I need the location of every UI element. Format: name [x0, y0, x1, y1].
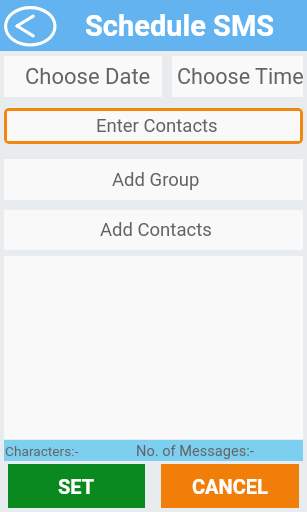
button[interactable]: Choose Date	[4, 56, 162, 97]
staticText: SET	[58, 475, 95, 498]
staticText: Add Group	[112, 169, 200, 191]
staticText: Choose Date	[25, 64, 151, 90]
button[interactable]: Back	[3, 5, 57, 47]
staticText: Choose Time	[177, 64, 304, 89]
button[interactable]: Choose Time	[172, 56, 303, 97]
button[interactable]: SET	[8, 464, 145, 508]
staticText: Characters:-	[5, 443, 79, 459]
staticText: Add Contacts	[100, 219, 212, 241]
staticText: Schedule SMS	[85, 9, 275, 43]
staticText: Enter Contacts	[96, 115, 218, 137]
staticText: No. of Messages:-	[136, 442, 254, 459]
button[interactable]: Enter Contacts	[4, 108, 303, 144]
staticText: CANCEL	[192, 475, 268, 498]
button[interactable]: CANCEL	[161, 464, 299, 508]
button[interactable]: Add Group	[4, 159, 303, 200]
button[interactable]: Add Contacts	[4, 210, 303, 250]
